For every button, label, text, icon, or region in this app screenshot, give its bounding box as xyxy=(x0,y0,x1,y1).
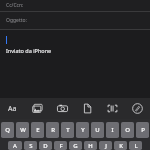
button[interactable]: Camera xyxy=(50,98,75,119)
button[interactable]: K xyxy=(114,141,127,150)
staticText: P xyxy=(141,126,145,134)
staticText: L xyxy=(134,142,138,150)
staticText: W xyxy=(20,126,26,134)
staticText: F xyxy=(59,142,63,150)
staticText: G xyxy=(73,142,78,150)
staticText: U xyxy=(95,126,100,134)
staticText: Cc/Ccn: xyxy=(6,2,24,9)
button[interactable]: Scan document xyxy=(100,98,125,119)
button[interactable]: E xyxy=(31,122,44,138)
button[interactable]: L xyxy=(129,141,142,150)
staticText: A xyxy=(13,142,17,150)
staticText: Q xyxy=(5,126,10,134)
button[interactable]: H xyxy=(84,141,97,150)
staticText: H xyxy=(88,142,93,150)
button[interactable]: T xyxy=(61,122,74,138)
button[interactable]: R xyxy=(46,122,59,138)
staticText: I xyxy=(111,126,114,134)
button[interactable]: U xyxy=(91,122,104,138)
staticText: Inviato da iPhone xyxy=(6,47,52,54)
staticText: J xyxy=(105,142,107,150)
button[interactable]: Q xyxy=(1,122,14,138)
staticText: Y xyxy=(81,126,85,134)
button[interactable]: O xyxy=(121,122,134,138)
staticText: S xyxy=(29,142,33,150)
button[interactable]: I xyxy=(106,122,119,138)
button[interactable]: D xyxy=(39,141,52,150)
button[interactable]: J xyxy=(99,141,112,150)
staticText: Oggetto: xyxy=(6,17,27,24)
button[interactable]: F xyxy=(54,141,67,150)
button[interactable]: Formatting xyxy=(0,98,25,119)
staticText: O xyxy=(125,126,130,134)
staticText: D xyxy=(43,142,48,150)
button[interactable]: P xyxy=(136,122,149,138)
staticText: R xyxy=(51,126,55,134)
button[interactable]: Photos xyxy=(25,98,50,119)
button[interactable]: Cc/Ccn: xyxy=(0,0,150,11)
staticText: K xyxy=(119,142,123,150)
button[interactable]: G xyxy=(69,141,82,150)
button[interactable]: Y xyxy=(76,122,89,138)
button[interactable]: W xyxy=(16,122,29,138)
button[interactable]: Oggetto: xyxy=(0,12,150,29)
staticText: T xyxy=(66,126,70,134)
button[interactable]: Inviato da iPhone xyxy=(0,30,150,98)
staticText: E xyxy=(36,126,40,134)
button[interactable]: S xyxy=(24,141,37,150)
staticText: Aa xyxy=(8,104,17,114)
button[interactable]: Attach document xyxy=(75,98,100,119)
button[interactable]: Markup xyxy=(125,98,150,119)
button[interactable]: A xyxy=(8,141,22,150)
